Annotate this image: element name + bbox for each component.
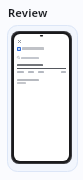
- staticText: Review Orders: [8, 5, 83, 20]
- button[interactable]: [17, 45, 66, 52]
- button[interactable]: Search: [17, 54, 66, 61]
- button[interactable]: Close: [17, 39, 22, 44]
